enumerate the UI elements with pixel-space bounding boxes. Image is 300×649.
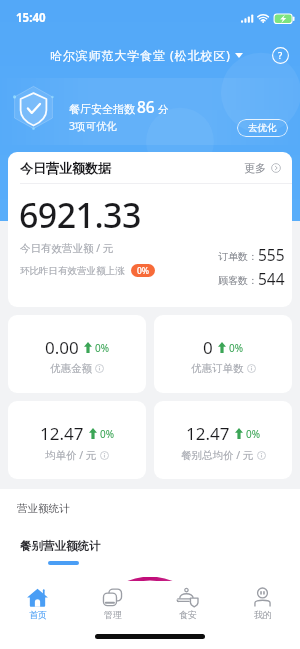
button[interactable]: 12.47 — [8, 401, 146, 479]
staticText: 0% — [246, 427, 261, 441]
staticText: 0% — [229, 341, 244, 355]
button[interactable]: 管理 — [75, 588, 150, 620]
staticText: 今日有效营业额 / 元 — [20, 241, 114, 255]
button[interactable]: 去优化 — [237, 119, 288, 137]
staticText: 餐厅安全指数 — [69, 102, 135, 116]
staticText: 管理 — [104, 609, 122, 620]
button[interactable]: 餐厅安全指数 — [0, 78, 300, 145]
staticText: 12.47 — [186, 422, 230, 445]
staticText: 0% — [137, 265, 150, 277]
staticText: 86 — [137, 96, 155, 117]
staticText: 555 — [258, 244, 285, 265]
button[interactable]: 0 — [154, 315, 292, 393]
staticText: 哈尔滨师范大学食堂 (松北校区) — [50, 47, 231, 63]
button[interactable]: 帮助 — [272, 47, 289, 64]
button[interactable]: 首页 — [0, 588, 75, 620]
staticText: 0 — [203, 336, 213, 359]
staticText: 优惠金额 — [50, 362, 92, 375]
staticText: 544 — [258, 268, 285, 289]
staticText: 15:40 — [16, 10, 46, 26]
staticText: 餐别总均价 / 元 — [181, 448, 254, 462]
staticText: 今日营业额数据 — [20, 160, 111, 176]
staticText: 均单价 / 元 — [45, 448, 97, 462]
staticText: 我的 — [254, 609, 272, 620]
button[interactable]: 我的 — [225, 588, 300, 620]
staticText: ? — [278, 49, 283, 62]
staticText: 首页 — [29, 609, 47, 620]
staticText: 优惠订单数 — [191, 362, 244, 375]
staticText: 食安 — [179, 609, 197, 620]
staticText: 订单数： — [218, 250, 258, 263]
staticText: 0.00 — [45, 336, 79, 359]
staticText: 更多 — [244, 161, 266, 175]
staticText: 12.47 — [40, 422, 84, 445]
staticText: 3项可优化 — [69, 119, 118, 133]
button[interactable]: 食安 — [150, 588, 225, 620]
staticText: 营业额统计 — [17, 502, 70, 515]
button[interactable]: 12.47 — [154, 401, 292, 479]
button[interactable]: 更多 — [244, 161, 281, 175]
staticText: 环比昨日有效营业额上涨 — [20, 265, 125, 277]
staticText: 去优化 — [248, 122, 277, 134]
staticText: 分 — [158, 103, 169, 116]
staticText: 0% — [95, 341, 110, 355]
staticText: 餐别营业额统计 — [20, 539, 101, 553]
button[interactable]: 0.00 — [8, 315, 146, 393]
staticText: 0% — [100, 427, 115, 441]
staticText: 6921.33 — [19, 192, 141, 238]
button[interactable]: 哈尔滨师范大学食堂 (松北校区) — [50, 47, 243, 63]
staticText: 顾客数： — [218, 274, 258, 287]
